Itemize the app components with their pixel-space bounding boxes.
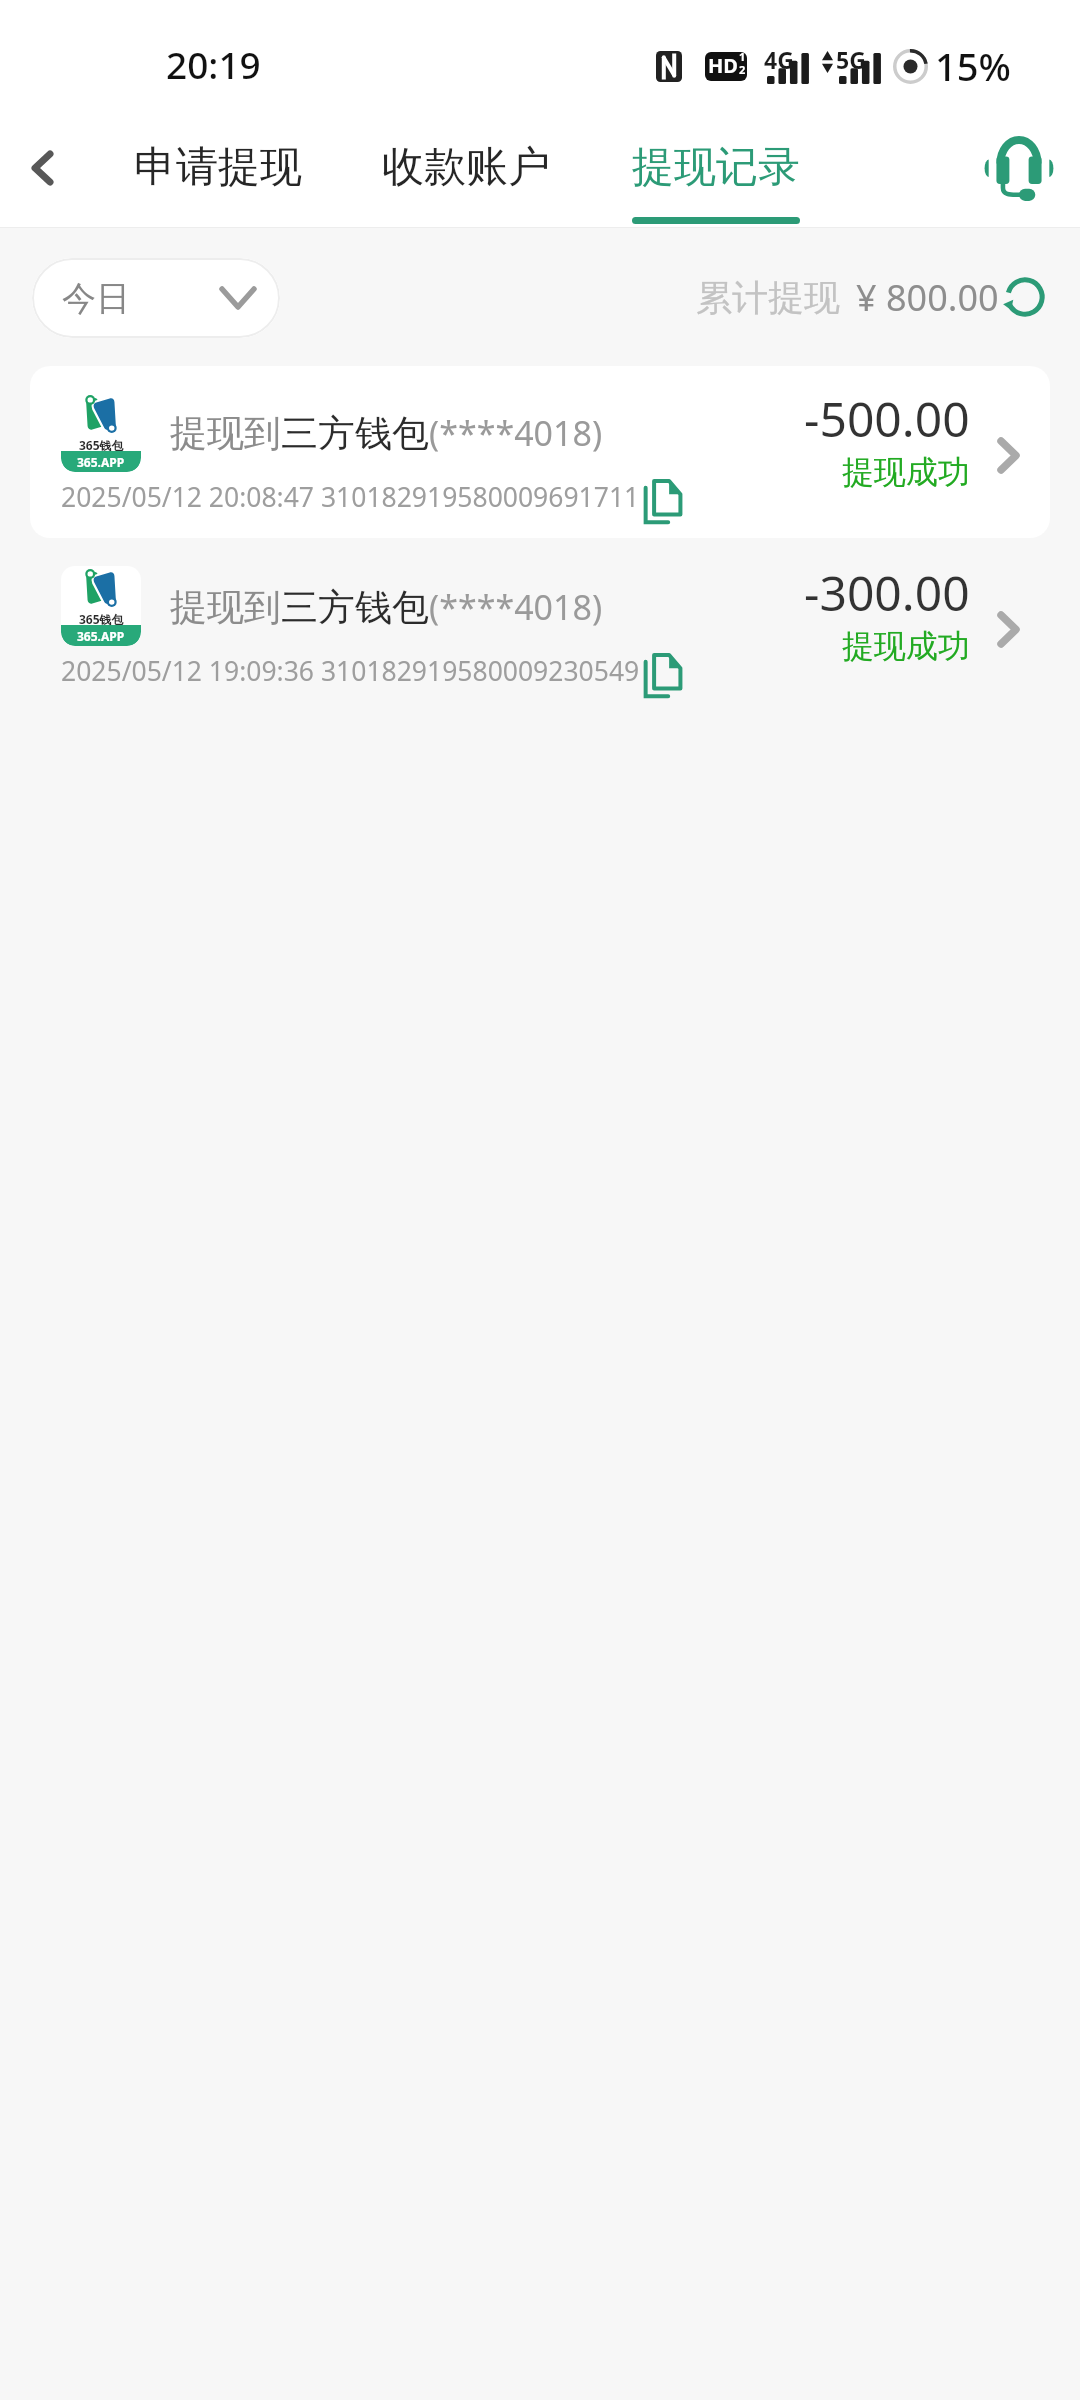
staticText: 收款账户: [382, 141, 550, 194]
staticText: 1: [739, 52, 746, 64]
staticText: HD: [708, 52, 738, 79]
staticText: 365.APP: [77, 454, 125, 470]
staticText: 365.APP: [77, 628, 125, 644]
button[interactable]: Detail: [975, 415, 1041, 495]
staticText: 提现成功: [842, 452, 970, 492]
staticText: 提现成功: [842, 626, 970, 666]
button[interactable]: 申请提现: [120, 112, 316, 228]
staticText: -300.00: [804, 560, 970, 625]
staticText: 365钱包: [79, 611, 124, 627]
staticText: 提现到三方钱包(****4018): [170, 584, 603, 631]
button[interactable]: Customer service: [980, 131, 1058, 201]
staticText: 15%: [935, 40, 1011, 92]
button[interactable]: Copy order number: [639, 474, 688, 531]
staticText: 2025/05/12 20:08:47 31018291958000969171…: [61, 479, 640, 515]
staticText: 申请提现: [134, 141, 302, 194]
staticText: 365钱包: [79, 437, 124, 453]
staticText: 今日: [62, 277, 130, 320]
button[interactable]: Detail: [975, 589, 1041, 669]
staticText: 5G: [836, 44, 866, 75]
staticText: 提现记录: [632, 141, 800, 194]
button[interactable]: [30, 540, 1050, 712]
staticText: 20:19: [166, 39, 261, 89]
staticText: 2: [739, 62, 746, 76]
staticText: 提现到三方钱包(****4018): [170, 410, 603, 457]
button[interactable]: 今日: [32, 258, 280, 338]
staticText: ¥ 800.00: [856, 273, 999, 322]
staticText: -500.00: [804, 386, 970, 451]
button[interactable]: Refresh: [1000, 272, 1050, 322]
button[interactable]: Copy order number: [639, 648, 688, 705]
button[interactable]: 收款账户: [368, 112, 564, 228]
staticText: 累计提现: [696, 275, 840, 320]
button[interactable]: 提现记录: [618, 112, 814, 228]
staticText: 4G: [764, 44, 794, 75]
button[interactable]: [30, 366, 1050, 538]
button[interactable]: Back: [3, 120, 81, 216]
staticText: 2025/05/12 19:09:36 31018291958000923054…: [61, 653, 640, 689]
